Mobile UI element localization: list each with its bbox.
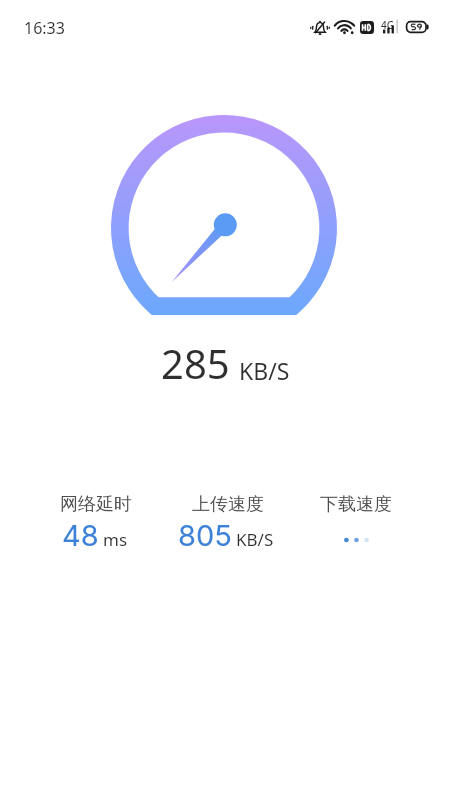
- staticText: 805: [178, 518, 232, 553]
- staticText: 网络延时: [60, 493, 132, 516]
- staticText: KB/S: [236, 528, 274, 551]
- button[interactable]: 上传速度: [163, 493, 293, 553]
- staticText: 4G: [381, 18, 394, 32]
- staticText: 48: [62, 518, 99, 553]
- staticText: 16:33: [24, 17, 65, 39]
- staticText: 285: [161, 336, 230, 390]
- staticText: ms: [103, 528, 128, 551]
- staticText: 上传速度: [192, 493, 264, 516]
- button[interactable]: 网络延时: [31, 493, 161, 553]
- staticText: KB/S: [239, 355, 290, 386]
- staticText: 下载速度: [320, 493, 392, 516]
- button[interactable]: 下载速度: [291, 493, 421, 543]
